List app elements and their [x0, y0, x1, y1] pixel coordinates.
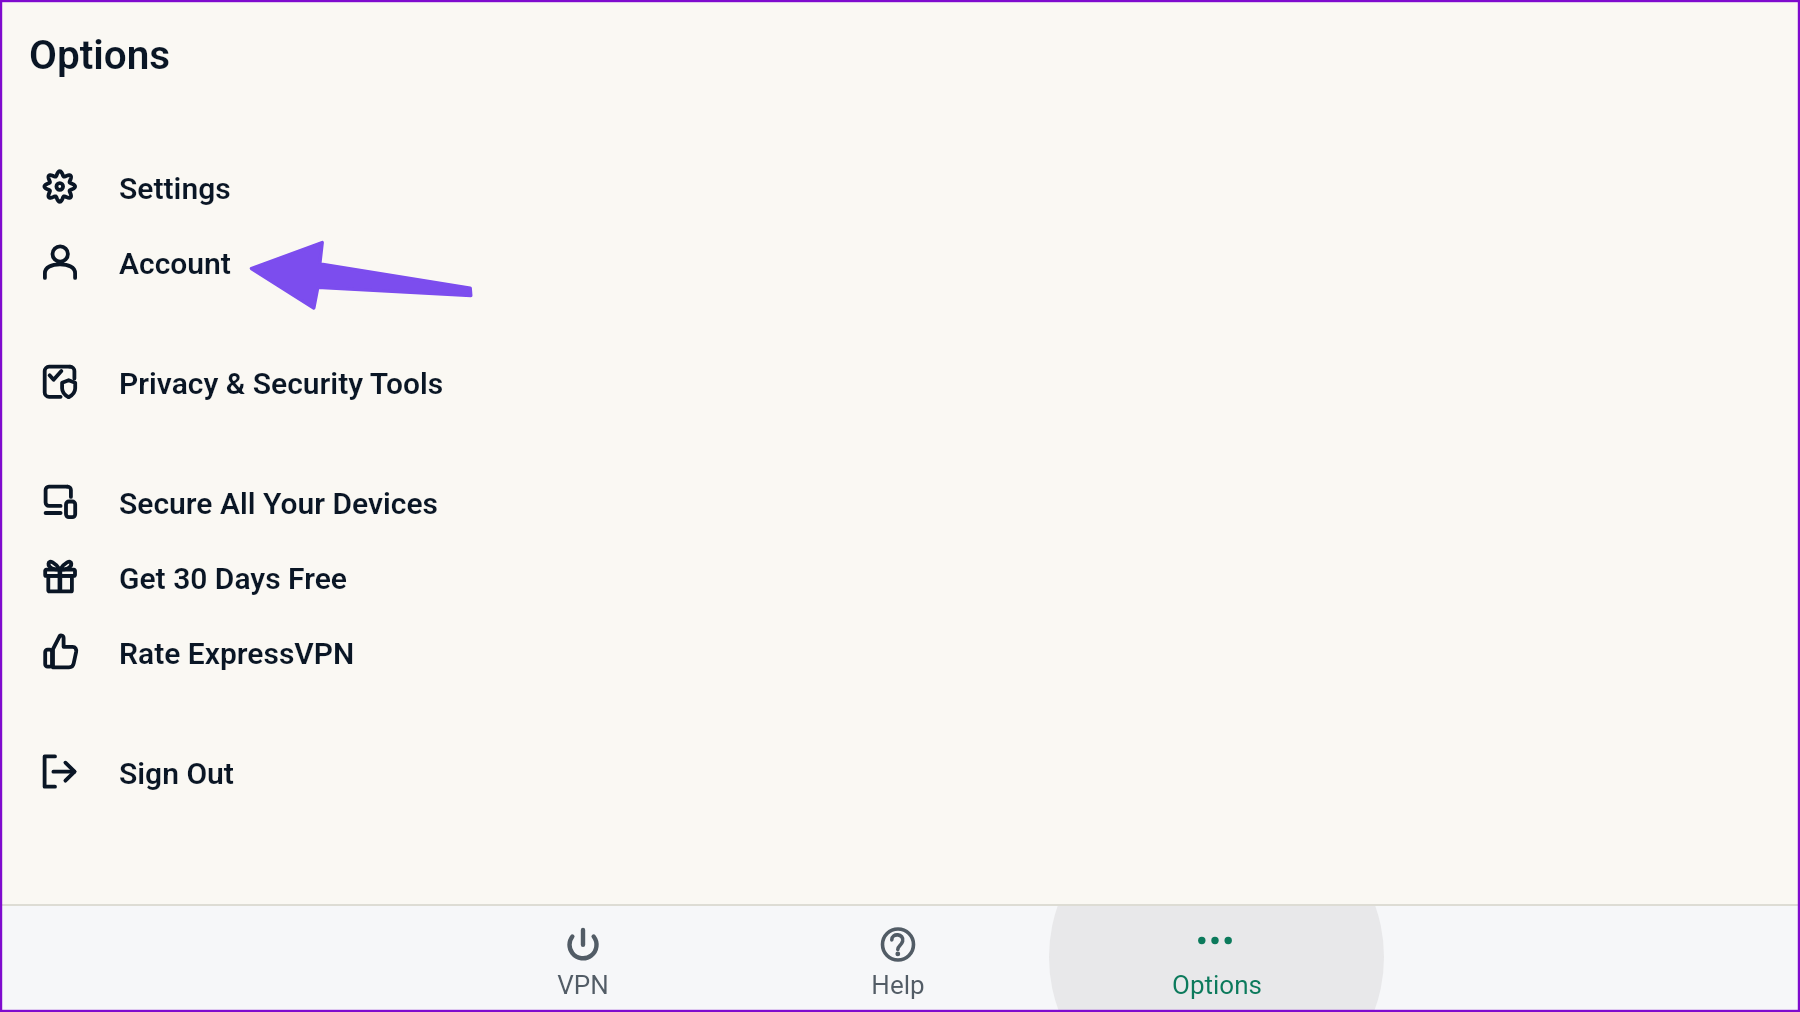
staticText: Options — [29, 31, 171, 78]
button[interactable]: VPN — [418, 906, 748, 1012]
staticText: Help — [871, 970, 925, 1000]
staticText: Secure All Your Devices — [119, 486, 439, 521]
other: VPN — [562, 918, 604, 960]
button[interactable]: Rate ExpressVPN — [0, 619, 1800, 681]
staticText: Settings — [119, 171, 231, 206]
staticText: Sign Out — [119, 756, 234, 791]
button[interactable]: Help — [733, 906, 1063, 1012]
staticText: Get 30 Days Free — [119, 561, 347, 596]
staticText: Privacy & Security Tools — [119, 366, 444, 401]
staticText: Account — [119, 246, 231, 281]
other: Options — [1196, 918, 1238, 960]
button[interactable]: Options — [1052, 906, 1382, 1012]
button[interactable]: Privacy & Security Tools — [0, 349, 1800, 411]
button[interactable]: Settings — [0, 154, 1800, 216]
button[interactable]: Sign Out — [0, 739, 1800, 801]
button[interactable]: Account — [0, 229, 1800, 291]
staticText: Rate ExpressVPN — [119, 636, 355, 671]
button[interactable]: Secure All Your Devices — [0, 469, 1800, 531]
button[interactable]: Get 30 Days Free — [0, 544, 1800, 606]
other: Help — [877, 918, 919, 960]
staticText: Options — [1172, 970, 1262, 1000]
staticText: VPN — [557, 970, 609, 1000]
